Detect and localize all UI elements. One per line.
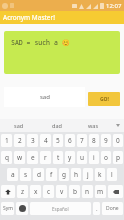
button[interactable]: sad <box>0 119 38 132</box>
staticText: 5 <box>56 136 60 145</box>
staticText: was <box>88 122 99 129</box>
button[interactable]: was <box>75 119 112 132</box>
staticText: x <box>34 187 38 196</box>
button[interactable]: Done <box>102 202 123 215</box>
staticText: f <box>50 170 53 179</box>
button[interactable]: x <box>30 185 41 198</box>
staticText: t <box>57 153 60 162</box>
button[interactable]: 7 <box>77 134 87 147</box>
staticText: d <box>37 170 41 179</box>
button[interactable]: Shift <box>1 185 15 198</box>
button[interactable]: c <box>43 185 54 198</box>
button[interactable]: 0 <box>113 134 123 147</box>
button[interactable]: z <box>17 185 28 198</box>
button[interactable]: m <box>95 185 106 198</box>
staticText: 8 <box>92 136 96 145</box>
button[interactable]: Backspace <box>108 185 123 198</box>
button[interactable]: sad <box>4 87 85 107</box>
staticText: 2 <box>18 136 22 145</box>
button[interactable]: b <box>69 185 80 198</box>
staticText: s <box>24 170 28 179</box>
button[interactable]: r <box>40 151 51 164</box>
button[interactable]: h <box>71 168 81 181</box>
staticText: l <box>111 170 113 179</box>
button[interactable]: 9 <box>101 134 111 147</box>
staticText: SAD = such a 😊 <box>11 38 70 47</box>
button[interactable]: l <box>107 168 117 181</box>
staticText: j <box>87 170 89 179</box>
staticText: . <box>96 205 98 213</box>
button[interactable]: 1 <box>1 134 12 147</box>
staticText: Español <box>52 206 69 212</box>
staticText: y <box>68 153 72 162</box>
button[interactable]: GO! <box>88 92 120 106</box>
staticText: v <box>60 187 64 196</box>
staticText: o <box>104 153 108 162</box>
staticText: n <box>85 187 90 196</box>
button[interactable]: 4 <box>40 134 51 147</box>
button[interactable]: a <box>7 168 18 181</box>
staticText: m <box>97 187 104 196</box>
button[interactable]: n <box>82 185 93 198</box>
staticText: q <box>5 153 9 162</box>
staticText: 4 <box>44 136 48 145</box>
staticText: k <box>98 170 102 179</box>
button[interactable]: d <box>33 168 44 181</box>
button[interactable]: 8 <box>89 134 99 147</box>
button[interactable]: t <box>53 151 63 164</box>
button[interactable]: s <box>20 168 31 181</box>
staticText: i <box>93 153 95 162</box>
button[interactable]: More suggestions <box>112 119 124 132</box>
staticText: 1 <box>5 136 9 145</box>
button[interactable]: e <box>27 151 38 164</box>
staticText: Acronym Master! <box>3 13 55 22</box>
button[interactable]: Sym <box>1 202 14 215</box>
staticText: dad <box>52 122 62 129</box>
button[interactable]: j <box>83 168 93 181</box>
staticText: a <box>11 170 15 179</box>
button[interactable]: 2 <box>14 134 25 147</box>
staticText: b <box>73 187 77 196</box>
staticText: 12:07 <box>106 2 122 10</box>
button[interactable]: 3 <box>27 134 38 147</box>
staticText: h <box>74 170 79 179</box>
button[interactable]: dad <box>38 119 75 132</box>
button[interactable]: Emoji <box>16 202 28 215</box>
staticText: 6 <box>68 136 72 145</box>
button[interactable]: u <box>77 151 87 164</box>
button[interactable]: v <box>56 185 67 198</box>
staticText: r <box>44 153 47 162</box>
staticText: 3 <box>31 136 35 145</box>
button[interactable]: Español <box>30 202 91 215</box>
button[interactable]: 6 <box>65 134 75 147</box>
button[interactable]: w <box>14 151 25 164</box>
button[interactable]: p <box>113 151 123 164</box>
button[interactable]: . <box>93 202 100 215</box>
staticText: Done <box>106 205 119 212</box>
staticText: sad <box>14 122 24 129</box>
staticText: w <box>17 153 23 162</box>
button[interactable]: k <box>95 168 105 181</box>
staticText: p <box>116 153 120 162</box>
staticText: g <box>62 170 66 179</box>
button[interactable]: q <box>1 151 12 164</box>
staticText: c <box>47 187 51 196</box>
staticText: u <box>80 153 85 162</box>
button[interactable]: y <box>65 151 75 164</box>
staticText: 0 <box>116 136 120 145</box>
button[interactable]: g <box>59 168 69 181</box>
staticText: 9 <box>104 136 108 145</box>
staticText: e <box>31 153 35 162</box>
button[interactable]: o <box>101 151 111 164</box>
staticText: GO! <box>100 96 109 103</box>
button[interactable]: f <box>46 168 57 181</box>
staticText: z <box>21 187 25 196</box>
staticText: Sym <box>3 205 13 212</box>
staticText: sad <box>40 93 50 101</box>
button[interactable]: 5 <box>53 134 63 147</box>
staticText: 7 <box>80 136 84 145</box>
button[interactable]: i <box>89 151 99 164</box>
